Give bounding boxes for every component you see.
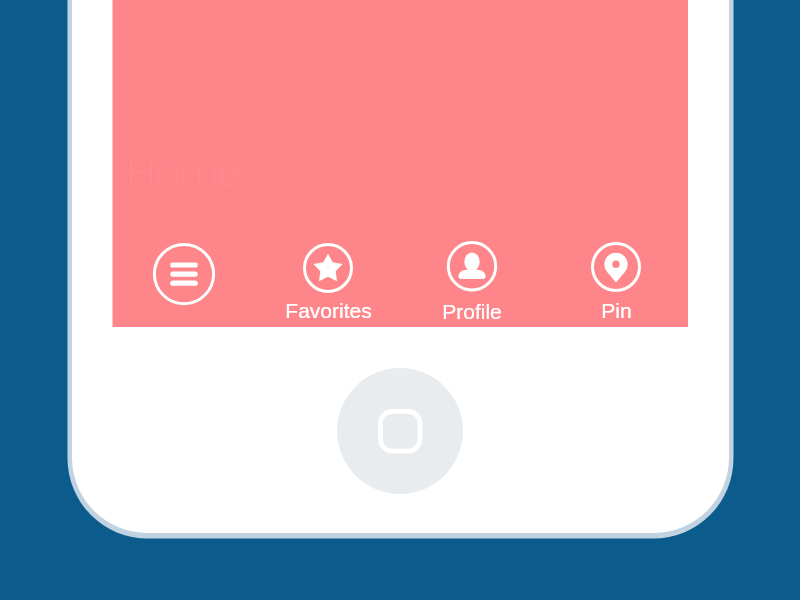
staticText: Profile bbox=[442, 300, 502, 323]
staticText: Pin bbox=[601, 299, 632, 322]
staticText: Favorites bbox=[285, 299, 372, 322]
button[interactable]: Profile bbox=[410, 232, 534, 328]
button[interactable]: Menu bbox=[122, 234, 246, 314]
button[interactable]: Favorites bbox=[266, 234, 390, 327]
button[interactable]: Home bbox=[337, 368, 463, 494]
button[interactable]: Pin bbox=[554, 233, 678, 327]
